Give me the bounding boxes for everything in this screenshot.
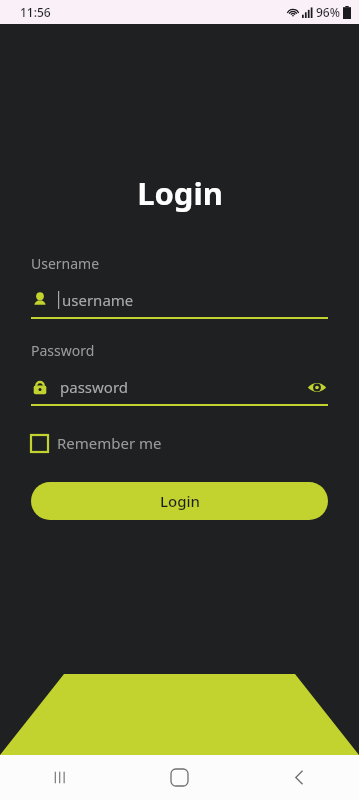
staticText: Login (137, 172, 223, 214)
button[interactable]: password (31, 374, 328, 406)
staticText: Password (31, 341, 95, 360)
button[interactable]: Back (239, 755, 359, 800)
staticText: Username (31, 254, 100, 273)
staticText: 11:56 (20, 4, 51, 20)
staticText: 96% (316, 4, 340, 20)
button[interactable]: Home (119, 755, 239, 800)
staticText: Login (160, 491, 200, 511)
staticText: username (62, 290, 134, 310)
button[interactable]: Remember me (31, 433, 162, 453)
staticText: password (60, 377, 306, 397)
button[interactable]: Show password (306, 376, 328, 398)
staticText: Remember me (57, 433, 162, 453)
button[interactable]: Login (31, 482, 328, 520)
button[interactable]: Recent apps (0, 755, 119, 800)
button[interactable]: username (31, 287, 328, 319)
